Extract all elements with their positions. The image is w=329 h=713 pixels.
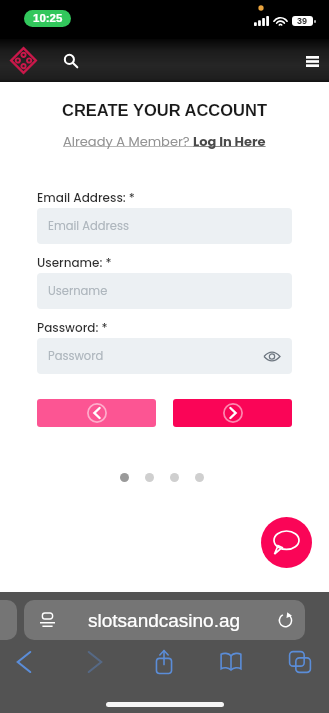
button[interactable]: Email Address xyxy=(37,208,292,244)
button[interactable]: Show password xyxy=(261,345,283,367)
staticText: 39 xyxy=(297,16,308,26)
staticText: CREATE YOUR ACCOUNT xyxy=(62,101,268,119)
button[interactable]: Share xyxy=(142,647,186,677)
staticText: Username: * xyxy=(37,254,112,271)
staticText: Already A Member? Log In Here xyxy=(63,132,266,150)
button[interactable]: Next xyxy=(173,399,292,427)
staticText: Email Address xyxy=(48,218,129,234)
button[interactable]: Menu xyxy=(297,46,327,76)
button[interactable]: Forward xyxy=(73,647,117,677)
button[interactable]: Step 1 xyxy=(120,473,129,482)
button[interactable]: Username xyxy=(37,273,292,309)
staticText: Password xyxy=(48,348,104,364)
staticText: Password: * xyxy=(37,319,108,336)
button[interactable]: Step 2 xyxy=(145,473,154,482)
button[interactable]: Previous tab xyxy=(0,600,17,640)
button[interactable]: Search xyxy=(55,45,86,76)
staticText: Email Address: * xyxy=(37,189,135,206)
button[interactable]: Back xyxy=(37,399,156,427)
button[interactable]: Address bar xyxy=(24,600,305,640)
staticText: 10:25 xyxy=(33,12,63,25)
button[interactable]: Tabs xyxy=(278,647,322,677)
staticText: Username xyxy=(48,283,108,299)
button[interactable]: Chat xyxy=(261,517,312,568)
button[interactable]: Step 4 xyxy=(195,473,204,482)
button[interactable]: Page settings xyxy=(36,609,58,631)
button[interactable]: Step 3 xyxy=(170,473,179,482)
button[interactable]: Already A Member? Log In Here xyxy=(61,131,268,151)
button[interactable]: Back xyxy=(2,647,46,677)
button[interactable]: Recording indicator xyxy=(24,10,71,27)
button[interactable]: Reload xyxy=(273,608,297,632)
button[interactable]: Home xyxy=(6,43,41,78)
staticText: slotsandcasino.ag xyxy=(88,610,241,631)
button[interactable]: Password xyxy=(37,338,292,374)
button[interactable]: Bookmarks xyxy=(209,647,253,677)
